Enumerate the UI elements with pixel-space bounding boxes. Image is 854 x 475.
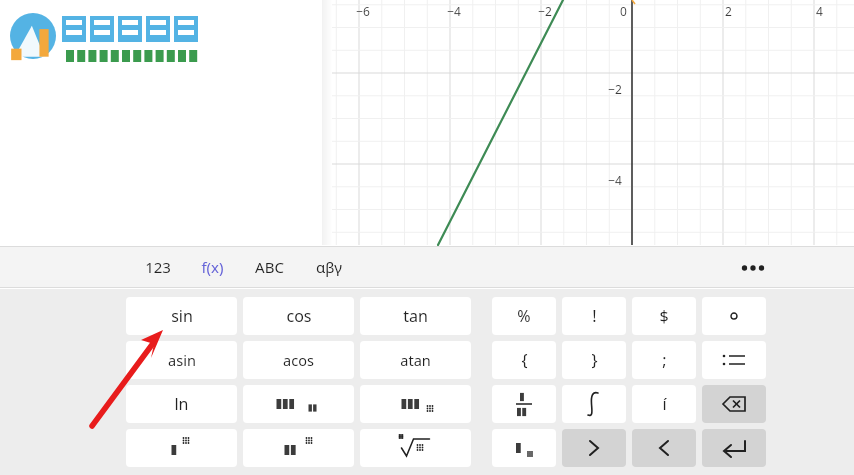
button[interactable]: a subscript: [492, 429, 556, 467]
button[interactable]: f(x): [190, 246, 234, 288]
staticText: f(x): [201, 257, 224, 277]
staticText: −6: [356, 3, 370, 19]
staticText: −4: [447, 3, 461, 19]
button[interactable]: $: [632, 297, 696, 335]
button[interactable]: asin: [126, 341, 237, 379]
button[interactable]: !: [562, 297, 626, 335]
button[interactable]: ;: [632, 341, 696, 379]
button[interactable]: ln: [126, 385, 237, 423]
button[interactable]: Backspace: [702, 385, 766, 423]
staticText: }: [591, 349, 598, 371]
button[interactable]: degree: [702, 297, 766, 335]
button[interactable]: 123: [134, 246, 182, 288]
button[interactable]: acos: [243, 341, 354, 379]
staticText: −4: [608, 172, 622, 188]
staticText: $: [659, 305, 669, 327]
staticText: αβγ: [316, 257, 342, 277]
button[interactable]: tan: [360, 297, 471, 335]
button[interactable]: 10 to the power: [243, 429, 354, 467]
staticText: −2: [538, 3, 552, 19]
staticText: −2: [608, 81, 622, 97]
button[interactable]: derivative: [492, 385, 556, 423]
staticText: ;: [662, 349, 667, 371]
staticText: atan: [400, 350, 431, 370]
button[interactable]: Enter: [702, 429, 766, 467]
staticText: sin: [171, 305, 193, 327]
staticText: {: [521, 349, 528, 371]
button[interactable]: integral: [562, 385, 626, 423]
button[interactable]: Move left: [562, 429, 626, 467]
staticText: 4: [816, 3, 823, 19]
staticText: %: [517, 305, 531, 327]
staticText: cos: [286, 305, 312, 327]
button[interactable]: nth root: [360, 429, 471, 467]
button[interactable]: {: [492, 341, 556, 379]
button[interactable]: ABC: [244, 246, 294, 288]
button[interactable]: Move right: [632, 429, 696, 467]
button[interactable]: log base n: [360, 385, 471, 423]
button[interactable]: cos: [243, 297, 354, 335]
button[interactable]: atan: [360, 341, 471, 379]
staticText: tan: [403, 305, 428, 327]
staticText: ln: [174, 393, 189, 415]
button[interactable]: }: [562, 341, 626, 379]
button[interactable]: αβγ: [306, 246, 352, 288]
button[interactable]: í: [632, 385, 696, 423]
staticText: asin: [168, 350, 196, 370]
staticText: 2: [725, 3, 732, 19]
button[interactable]: sin: [126, 297, 237, 335]
staticText: ABC: [255, 257, 284, 277]
button[interactable]: More options: [736, 254, 770, 282]
staticText: acos: [283, 350, 314, 370]
staticText: 123: [145, 257, 171, 277]
button[interactable]: %: [492, 297, 556, 335]
button[interactable]: assign: [702, 341, 766, 379]
staticText: í: [662, 393, 667, 415]
button[interactable]: log base 10: [243, 385, 354, 423]
staticText: !: [592, 305, 597, 327]
button[interactable]: e to the power: [126, 429, 237, 467]
staticText: 0: [620, 3, 627, 19]
